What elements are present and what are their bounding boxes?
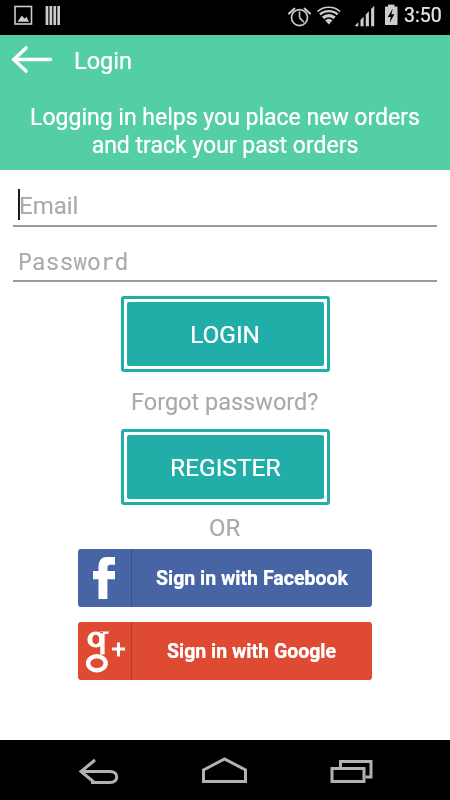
button[interactable]: Forgot password? bbox=[127, 384, 323, 420]
button[interactable]: LOGIN bbox=[127, 302, 324, 366]
staticText: Sign in with Google bbox=[167, 640, 337, 663]
button[interactable]: Password bbox=[13, 243, 437, 282]
staticText: 3:50 bbox=[404, 4, 442, 27]
button[interactable]: Home bbox=[150, 740, 300, 800]
button[interactable]: Sign in with Google bbox=[78, 622, 372, 680]
staticText: REGISTER bbox=[170, 453, 281, 482]
button[interactable]: Back bbox=[0, 740, 150, 800]
staticText: Email bbox=[19, 192, 79, 220]
button[interactable]: REGISTER bbox=[127, 435, 324, 499]
button[interactable]: Sign in with Facebook bbox=[78, 549, 372, 607]
button[interactable]: Recent apps bbox=[300, 740, 450, 800]
button[interactable]: Email bbox=[13, 187, 437, 227]
staticText: Login bbox=[74, 47, 132, 75]
button[interactable]: Back bbox=[2, 42, 62, 88]
staticText: Password bbox=[18, 246, 129, 276]
staticText: Logging in helps you place new orders an… bbox=[0, 104, 450, 159]
staticText: OR bbox=[209, 514, 241, 542]
staticText: Sign in with Facebook bbox=[156, 567, 348, 590]
staticText: LOGIN bbox=[190, 320, 261, 349]
